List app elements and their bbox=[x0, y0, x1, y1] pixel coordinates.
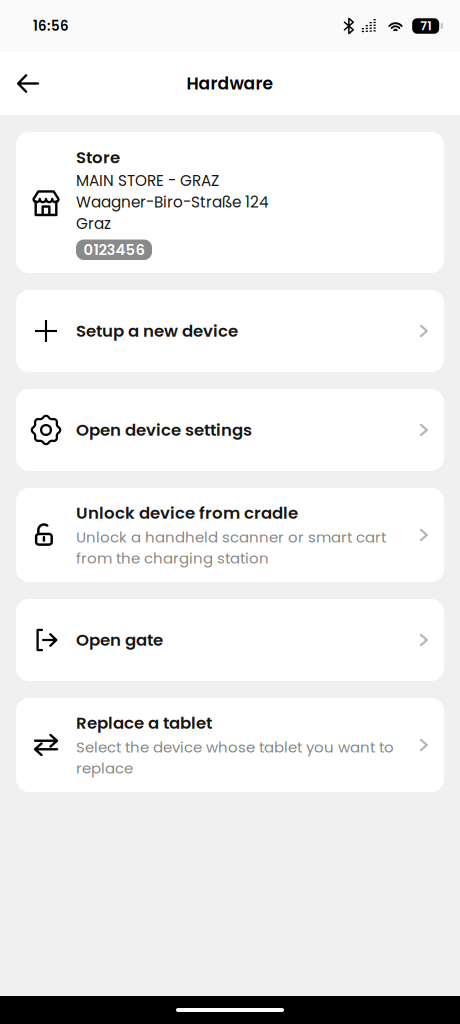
staticText: Open device settings bbox=[76, 418, 252, 441]
staticText: Replace a tablet bbox=[76, 711, 212, 734]
staticText: 71 bbox=[420, 17, 431, 35]
staticText: Select the device whose tablet you want … bbox=[76, 737, 394, 779]
staticText: Unlock a handheld scanner or smart cart … bbox=[76, 527, 386, 569]
staticText: Unlock device from cradle bbox=[76, 501, 298, 524]
button[interactable]: Replace a tablet bbox=[16, 698, 444, 792]
button[interactable]: Setup a new device bbox=[16, 290, 444, 372]
button[interactable]: Open device settings bbox=[16, 389, 444, 471]
staticText: Store bbox=[76, 146, 120, 169]
button[interactable]: Unlock device from cradle bbox=[16, 488, 444, 582]
button[interactable]: Back bbox=[0, 52, 56, 115]
staticText: Waagner-Biro-Straße 124 bbox=[76, 192, 269, 213]
staticText: MAIN STORE - GRAZ bbox=[76, 170, 219, 191]
staticText: Graz bbox=[76, 213, 111, 234]
staticText: Open gate bbox=[76, 628, 163, 651]
staticText: 16:56 bbox=[33, 17, 69, 35]
button[interactable]: Open gate bbox=[16, 599, 444, 681]
staticText: Setup a new device bbox=[76, 319, 238, 342]
staticText: Hardware bbox=[186, 72, 273, 95]
staticText: 0123456 bbox=[83, 239, 144, 260]
